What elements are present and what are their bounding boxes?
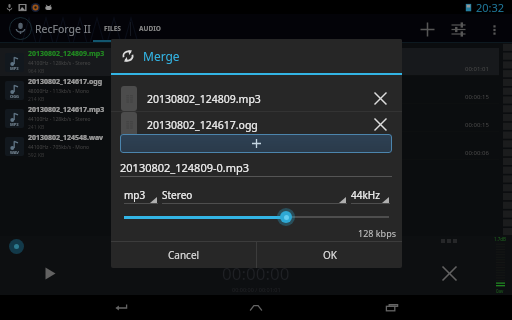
button[interactable]: Cancel — [111, 242, 256, 268]
staticText: 20130802_124617.mp3 — [28, 105, 105, 115]
staticText: 964 KB — [28, 68, 45, 75]
staticText: 20130802_124809.mp3 — [147, 92, 261, 106]
staticText: mp3 — [124, 188, 146, 202]
staticText: 00:00:15 — [465, 93, 489, 101]
staticText: MP3 — [10, 66, 19, 71]
staticText: 20130802_124617.ogg — [28, 77, 103, 87]
staticText: 1.7dB — [494, 236, 507, 242]
staticText: 00:00:15 — [465, 121, 489, 129]
button[interactable]: Remove — [368, 112, 393, 137]
staticText: Stereo — [162, 188, 193, 202]
button[interactable]: Add — [415, 17, 439, 41]
button[interactable]: Recents — [377, 295, 407, 320]
button[interactable]: Bitrate — [277, 208, 295, 226]
staticText: 0av — [496, 288, 504, 294]
button[interactable]: Play — [40, 263, 60, 283]
staticText: FILES — [104, 24, 121, 33]
staticText: 48000Hz - 113kb/s - Mono — [28, 88, 90, 95]
staticText: MP3 — [10, 122, 19, 127]
staticText: 00:00:00 — [222, 262, 290, 285]
button[interactable]: AUDIO — [139, 14, 161, 43]
staticText: 20130802_124617.ogg — [147, 118, 258, 132]
button[interactable]: 20130802_124617.ogg — [111, 112, 402, 137]
staticText: 44100Hz - 705kb/s - Mono — [28, 144, 90, 151]
staticText: 00:01:01 — [465, 65, 489, 73]
staticText: 44kHz — [351, 188, 380, 202]
staticText: 20130802_124548.wav — [28, 133, 104, 143]
staticText: 241 KB — [28, 124, 45, 131]
staticText: WAV — [10, 150, 19, 155]
staticText: RecForge II — [35, 22, 91, 36]
staticText: OGG — [10, 94, 19, 99]
button[interactable]: More options — [482, 17, 506, 41]
staticText: 214 KB — [28, 96, 45, 103]
staticText: 00:00:06 — [465, 149, 489, 157]
button[interactable]: OGG — [0, 76, 112, 104]
staticText: 128 kbps — [111, 227, 396, 239]
staticText: AUDIO — [139, 24, 161, 33]
button[interactable]: Remove — [368, 86, 393, 111]
button[interactable]: Back — [106, 295, 136, 320]
button[interactable]: WAV — [0, 132, 112, 160]
button[interactable]: Home — [241, 295, 271, 320]
button[interactable]: Close — [439, 263, 459, 283]
button[interactable]: Record — [9, 239, 24, 254]
staticText: OK — [323, 248, 337, 262]
staticText: 00:00:00 / 00:01:01 — [232, 286, 281, 293]
button[interactable]: Settings — [446, 17, 470, 41]
staticText: Merge — [143, 48, 180, 64]
staticText: 20130802_124809-0.mp3 — [120, 160, 250, 175]
staticText: 20130802_124809.mp3 — [28, 49, 105, 59]
button[interactable]: 20130802_124809.mp3 — [111, 86, 402, 111]
button[interactable]: mp3 — [124, 188, 158, 204]
staticText: Cancel — [168, 248, 200, 262]
button[interactable]: OK — [257, 242, 402, 268]
button[interactable]: Add file — [120, 134, 392, 153]
staticText: 44100Hz - 128kb/s - Stereo — [28, 60, 91, 67]
staticText: 44100Hz - 128kb/s - Stereo — [28, 116, 91, 123]
button[interactable]: App icon — [9, 17, 32, 40]
button[interactable]: Stereo — [162, 188, 347, 204]
button[interactable]: MP3 — [0, 104, 112, 132]
staticText: 20:32 — [476, 0, 505, 14]
staticText: 592 KB — [28, 152, 45, 159]
button[interactable]: MP3 — [0, 48, 112, 76]
button[interactable]: 44kHz — [351, 188, 390, 204]
button[interactable]: FILES — [102, 14, 122, 43]
